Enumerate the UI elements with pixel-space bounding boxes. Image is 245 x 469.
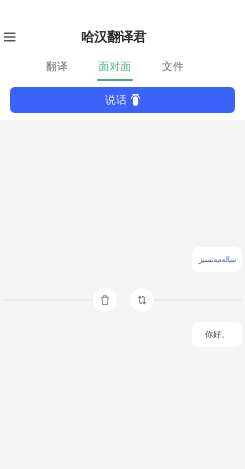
staticText: 说话 xyxy=(105,93,127,106)
button[interactable]: Menu xyxy=(0,23,25,50)
button[interactable]: 面对面 xyxy=(86,60,144,81)
button[interactable]: Clear conversation xyxy=(93,288,117,312)
button[interactable]: Swap languages xyxy=(130,288,154,312)
staticText: 你好。 xyxy=(205,330,229,339)
button[interactable]: 文件 xyxy=(144,60,202,81)
button[interactable]: 说话 xyxy=(10,87,235,113)
staticText: 翻译 xyxy=(46,60,68,73)
staticText: 哈汉翻译君 xyxy=(81,29,146,45)
staticText: سالەمەتسىز xyxy=(198,255,236,264)
staticText: 面对面 xyxy=(98,60,131,73)
button[interactable]: 翻译 xyxy=(28,60,86,81)
staticText: 文件 xyxy=(162,60,184,73)
